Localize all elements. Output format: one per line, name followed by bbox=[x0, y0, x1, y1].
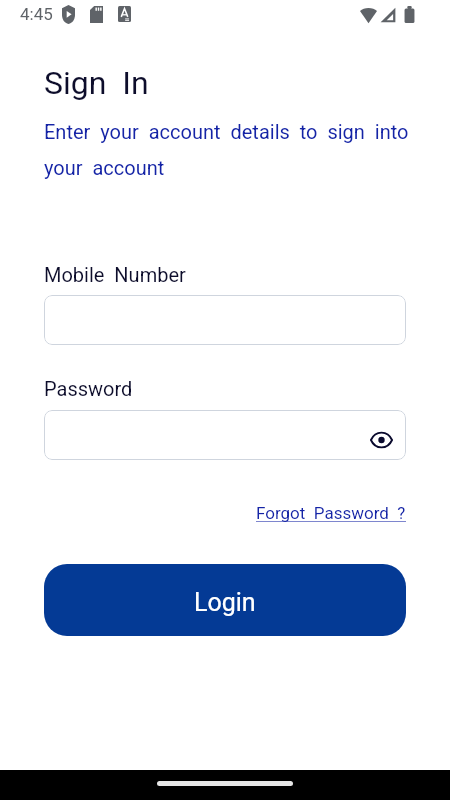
staticText: Password bbox=[44, 377, 133, 400]
button[interactable]: Login bbox=[44, 564, 406, 636]
button[interactable] bbox=[44, 295, 406, 345]
staticText: Enter your account details to sign into … bbox=[44, 120, 409, 179]
staticText: Sign In bbox=[44, 64, 149, 102]
staticText: Forgot Password ? bbox=[256, 503, 406, 523]
button[interactable]: Show password bbox=[359, 418, 403, 460]
staticText: Login bbox=[194, 588, 256, 617]
staticText: 4:45 bbox=[20, 4, 53, 24]
button[interactable]: Show password bbox=[44, 410, 406, 460]
staticText: Mobile Number bbox=[44, 263, 186, 286]
button[interactable]: Forgot Password ? bbox=[255, 500, 407, 526]
